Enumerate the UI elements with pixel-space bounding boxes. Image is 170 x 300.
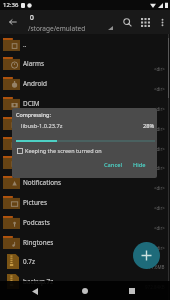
button[interactable]: Alarms	[0, 53, 170, 73]
staticText: 0	[30, 13, 34, 22]
button[interactable]: Movies	[0, 152, 170, 172]
staticText: Notifications	[23, 178, 62, 187]
staticText: <dir>	[154, 106, 165, 112]
staticText: Ringtones	[23, 238, 54, 247]
staticText: ..	[23, 40, 27, 49]
staticText: Alarms	[23, 59, 44, 68]
button[interactable]: ..	[0, 34, 170, 54]
staticText: Pictures	[23, 198, 48, 207]
staticText: <dir>	[154, 245, 165, 251]
button[interactable]: 0.7z	[0, 251, 170, 271]
button[interactable]: Documents	[0, 113, 170, 133]
staticText: Documents	[23, 119, 58, 128]
button[interactable]: Home	[77, 283, 93, 299]
button[interactable]: More options	[154, 14, 170, 30]
staticText: <dir>	[154, 165, 165, 171]
staticText: <dir>	[154, 126, 165, 132]
staticText: Keeping the screen turned on	[25, 147, 102, 154]
staticText: <dir>	[154, 86, 165, 92]
staticText: backup.7z	[23, 277, 54, 286]
staticText: <dir>	[154, 146, 165, 152]
button[interactable]: Pictures	[0, 192, 170, 212]
staticText: <dir>	[154, 205, 165, 211]
staticText: <dir>	[154, 225, 165, 231]
button[interactable]: Back	[27, 283, 43, 299]
button[interactable]: backup.7z	[0, 271, 170, 291]
staticText: Podcasts	[23, 218, 50, 227]
staticText: Download	[23, 139, 54, 148]
staticText: <dir>	[154, 185, 165, 191]
button[interactable]: Add	[133, 242, 160, 269]
staticText: /storage/emulated	[28, 24, 86, 33]
staticText: <dir>	[154, 66, 165, 72]
button[interactable]: Recents	[124, 283, 140, 299]
button[interactable]: Ringtones	[0, 232, 170, 252]
button[interactable]: DCIM	[0, 93, 170, 113]
staticText: 171.6MB	[146, 264, 165, 270]
button[interactable]: Keeping the screen turned on	[17, 147, 102, 154]
button[interactable]: Download	[0, 133, 170, 153]
button[interactable]: Cancel	[101, 159, 126, 171]
button[interactable]: Podcasts	[0, 212, 170, 232]
staticText: libusb-1.0.23.7z	[21, 122, 63, 130]
staticText: 12:36	[3, 1, 19, 9]
button[interactable]: Hide	[130, 159, 149, 171]
button[interactable]: Back	[2, 11, 23, 33]
staticText: Compressing:	[16, 111, 51, 118]
staticText: 0.7z	[23, 257, 36, 266]
button[interactable]: Search	[118, 13, 136, 31]
staticText: 28%	[143, 122, 155, 130]
button[interactable]: Grid view	[136, 13, 154, 31]
staticText: Android	[23, 79, 47, 88]
button[interactable]: Android	[0, 73, 170, 93]
staticText: DCIM	[23, 99, 40, 108]
button[interactable]: Notifications	[0, 172, 170, 192]
